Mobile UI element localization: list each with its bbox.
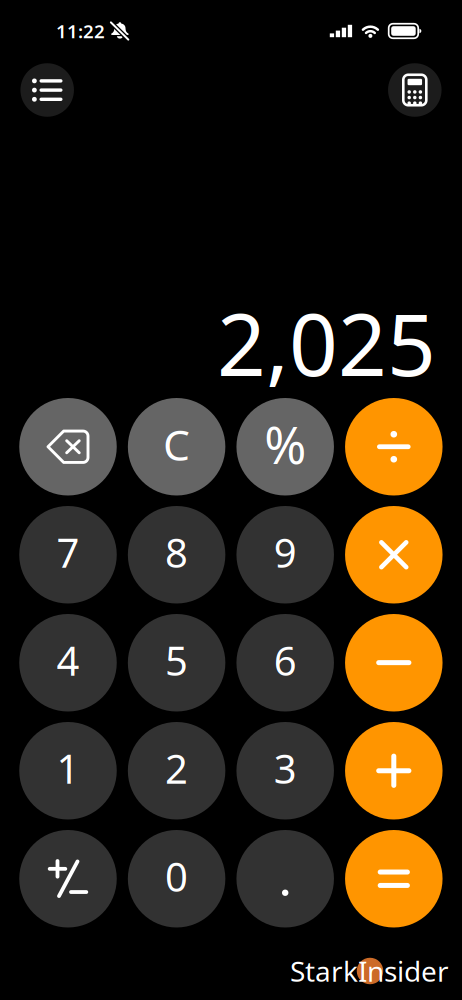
button[interactable]: 1: [19, 722, 117, 819]
staticText: 4: [56, 634, 79, 687]
button[interactable]: History: [20, 63, 74, 117]
button[interactable]: 4: [19, 614, 117, 711]
button[interactable]: Multiply: [345, 506, 443, 603]
staticText: 6: [274, 634, 297, 687]
staticText: Insider: [358, 952, 449, 990]
button[interactable]: Minus: [345, 614, 443, 711]
button[interactable]: 2: [128, 722, 225, 819]
button[interactable]: 9: [236, 506, 334, 603]
button[interactable]: 6: [236, 614, 334, 711]
button[interactable]: 8: [128, 506, 225, 603]
staticText: 3: [274, 742, 297, 795]
button[interactable]: 7: [19, 506, 117, 603]
staticText: 2,025: [217, 286, 436, 400]
staticText: C: [163, 416, 190, 473]
staticText: 2: [165, 742, 188, 795]
staticText: 5: [165, 634, 188, 687]
staticText: %: [264, 411, 306, 478]
button[interactable]: Calculator: [388, 63, 442, 117]
button[interactable]: 5: [128, 614, 225, 711]
staticText: 9: [274, 526, 297, 579]
staticText: 8: [165, 526, 188, 579]
button[interactable]: 0: [128, 830, 225, 927]
button[interactable]: Plus minus: [19, 830, 117, 927]
button[interactable]: C: [128, 398, 225, 495]
staticText: 11:22: [56, 19, 105, 43]
button[interactable]: Backspace: [19, 398, 117, 495]
button[interactable]: Equals: [345, 830, 443, 927]
button[interactable]: Decimal point: [236, 830, 334, 927]
staticText: 0: [165, 850, 188, 903]
button[interactable]: Plus: [345, 722, 443, 819]
button[interactable]: %: [236, 398, 334, 495]
staticText: Stark: [290, 952, 358, 990]
button[interactable]: Divide: [345, 398, 443, 495]
staticText: 1: [56, 742, 79, 795]
staticText: 7: [56, 526, 79, 579]
button[interactable]: 3: [236, 722, 334, 819]
